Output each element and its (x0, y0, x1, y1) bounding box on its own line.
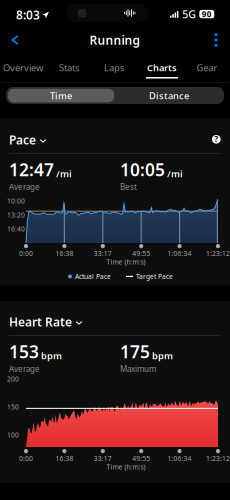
staticText: 10:00 (7, 197, 25, 205)
staticText: Gear (196, 61, 217, 74)
button[interactable]: Heart Rate (9, 314, 82, 330)
button[interactable]: Stats (46, 60, 92, 80)
staticText: 0:00 (19, 454, 33, 463)
staticText: 33:17 (94, 454, 112, 463)
staticText: bpm (41, 349, 62, 362)
staticText: Target Pace (136, 272, 173, 281)
button[interactable]: Distance (116, 89, 222, 102)
staticText: 1:23:12 (206, 249, 230, 258)
button[interactable]: Pace (9, 132, 46, 148)
staticText: 12:47 (9, 158, 54, 181)
staticText: Time (50, 89, 72, 102)
staticText: 33:17 (94, 249, 112, 258)
staticText: Maximum (120, 363, 156, 374)
staticText: Average (9, 181, 40, 192)
staticText: /mi (56, 167, 72, 180)
staticText: 49:55 (132, 249, 150, 258)
staticText: Time (h:m:s) (106, 463, 145, 471)
staticText: 175 (120, 340, 150, 363)
staticText: 200 (7, 375, 19, 383)
staticText: 153 (9, 340, 39, 363)
staticText: bpm (152, 349, 173, 362)
staticText: ? (214, 134, 218, 144)
staticText: Distance (149, 89, 189, 102)
staticText: Overview (3, 61, 43, 74)
staticText: 16:38 (55, 249, 73, 258)
staticText: 10:05 (120, 158, 165, 181)
staticText: 16:40 (7, 225, 25, 233)
staticText: Stats (59, 61, 79, 74)
staticText: 1:06:34 (168, 454, 192, 463)
button[interactable]: Overview (0, 60, 46, 80)
staticText: Laps (104, 61, 124, 74)
staticText: 150 (7, 403, 19, 411)
staticText: 1:06:34 (168, 249, 192, 258)
staticText: Time (h:m:s) (106, 258, 145, 266)
staticText: Charts (147, 61, 177, 74)
button[interactable]: Back (3, 30, 27, 50)
staticText: 100 (7, 431, 19, 439)
staticText: Pace (9, 132, 36, 148)
staticText: 49:55 (132, 454, 150, 463)
staticText: Running (89, 32, 140, 48)
staticText: 0:00 (19, 249, 33, 258)
staticText: 5G (182, 7, 196, 21)
staticText: Actual Pace (75, 272, 111, 281)
button[interactable]: Laps (91, 60, 137, 80)
button[interactable]: Time (8, 89, 114, 102)
button[interactable]: Gear (184, 60, 230, 80)
staticText: 8:03 (16, 7, 40, 23)
staticText: /mi (167, 167, 183, 180)
staticText: Average (9, 363, 40, 374)
staticText: Heart Rate (9, 314, 72, 330)
staticText: 13:20 (7, 211, 25, 219)
staticText: Best (120, 181, 137, 192)
staticText: 90 (202, 9, 212, 19)
staticText: 1:23:12 (206, 454, 230, 463)
staticText: 16:38 (55, 454, 73, 463)
button[interactable]: Charts (139, 60, 185, 80)
button[interactable]: Chart info (208, 130, 225, 149)
button[interactable]: More options (205, 30, 227, 50)
